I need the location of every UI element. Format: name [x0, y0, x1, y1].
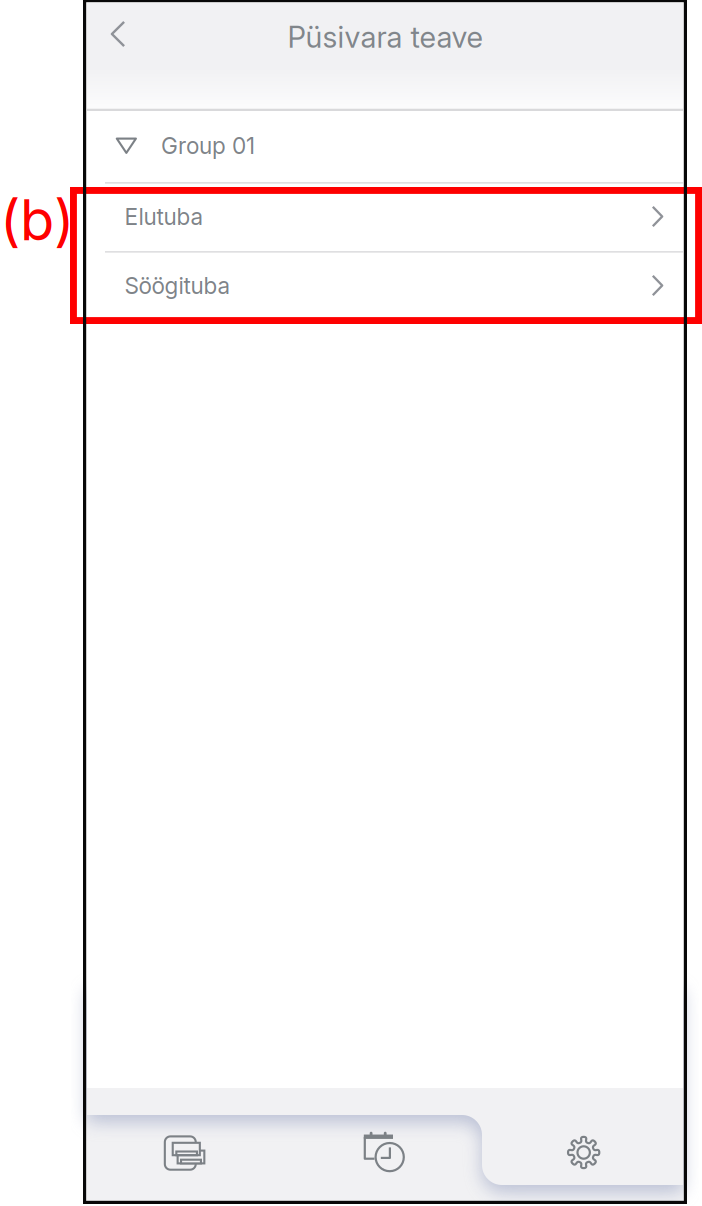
staticText: Püsivara teave — [287, 19, 482, 55]
staticText: (b) — [0, 186, 74, 254]
button[interactable]: Devices — [87, 1114, 286, 1201]
staticText: Group 01 — [161, 132, 255, 159]
button[interactable]: Elutuba — [87, 182, 683, 251]
button[interactable]: Schedule — [286, 1114, 484, 1201]
button[interactable]: Group 01 — [87, 111, 683, 182]
button[interactable]: Söögituba — [87, 251, 683, 320]
button[interactable]: Settings — [484, 1114, 683, 1201]
staticText: Elutuba — [124, 203, 203, 230]
staticText: Söögituba — [124, 272, 230, 299]
button[interactable]: Back — [91, 6, 145, 62]
